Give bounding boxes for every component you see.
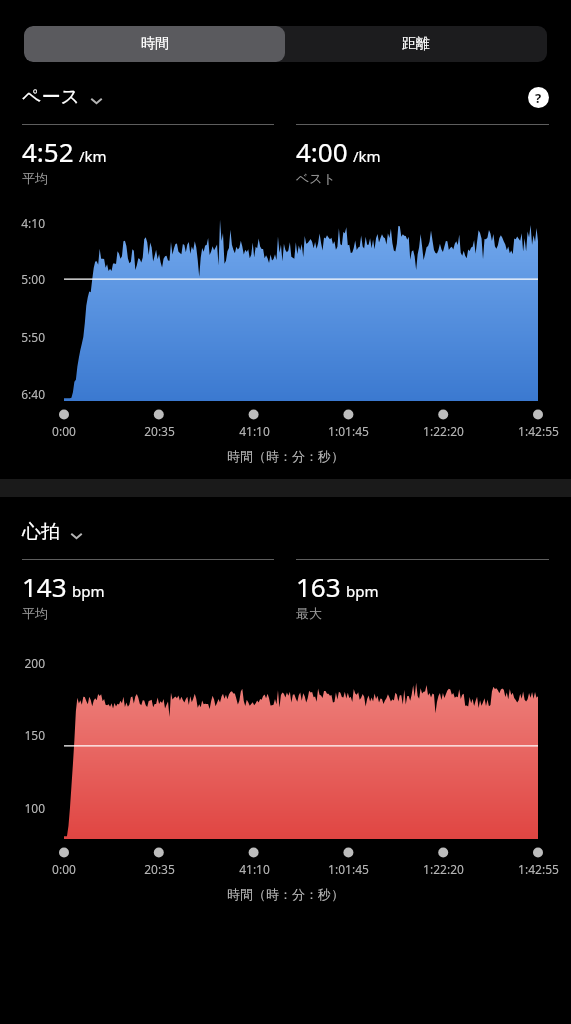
staticText: ? <box>535 89 542 107</box>
staticText: 平均 <box>22 605 48 621</box>
staticText: 4:00 <box>296 134 348 169</box>
button[interactable]: 心拍 <box>22 520 84 544</box>
staticText: 4:10 <box>0 215 45 231</box>
staticText: 20:35 <box>144 861 175 877</box>
staticText: 143 <box>22 569 67 604</box>
staticText: 41:10 <box>239 423 270 439</box>
staticText: 1:42:55 <box>518 423 559 439</box>
staticText: 41:10 <box>239 861 270 877</box>
staticText: /km <box>353 146 381 166</box>
staticText: 距離 <box>402 35 430 53</box>
staticText: 1:01:45 <box>328 861 369 877</box>
button[interactable]: 距離 <box>285 26 547 62</box>
staticText: 4:52 <box>22 134 74 169</box>
staticText: 20:35 <box>144 423 175 439</box>
button[interactable]: 時間 <box>24 26 285 62</box>
staticText: 100 <box>0 800 45 816</box>
staticText: 150 <box>0 727 45 743</box>
button[interactable]: ペース <box>22 85 104 109</box>
staticText: 心拍 <box>22 520 60 544</box>
staticText: bpm <box>346 581 379 601</box>
staticText: 平均 <box>22 170 48 186</box>
staticText: 1:22:20 <box>423 423 464 439</box>
staticText: 時間（時：分：秒） <box>227 448 344 464</box>
staticText: /km <box>79 146 107 166</box>
staticText: bpm <box>72 581 105 601</box>
staticText: 時間（時：分：秒） <box>227 886 344 902</box>
staticText: 0:00 <box>52 861 76 877</box>
staticText: 0:00 <box>52 423 76 439</box>
staticText: 1:42:55 <box>518 861 559 877</box>
staticText: ペース <box>22 85 80 109</box>
staticText: 163 <box>296 569 341 604</box>
staticText: 1:22:20 <box>423 861 464 877</box>
staticText: 5:50 <box>0 329 45 345</box>
staticText: 6:40 <box>0 386 45 402</box>
button[interactable]: Help <box>525 84 551 110</box>
staticText: ベスト <box>296 170 336 186</box>
staticText: 1:01:45 <box>328 423 369 439</box>
staticText: 時間 <box>141 35 169 53</box>
staticText: 最大 <box>296 605 322 621</box>
staticText: 5:00 <box>0 271 45 287</box>
staticText: 200 <box>0 655 45 671</box>
